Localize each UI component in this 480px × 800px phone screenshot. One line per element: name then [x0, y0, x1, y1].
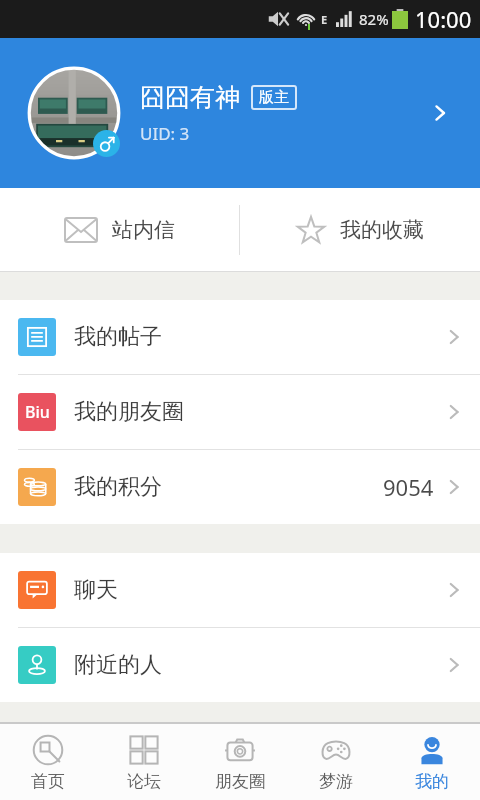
staticText: 梦游 [319, 771, 353, 792]
button[interactable]: 囧囧有神 [0, 38, 480, 188]
staticText: E [321, 12, 328, 27]
staticText: 82% [359, 9, 389, 29]
other: 查看个人资料 [418, 91, 462, 135]
staticText: 附近的人 [74, 651, 162, 679]
staticText: 首页 [31, 771, 65, 792]
staticText: Biu [25, 401, 50, 423]
button[interactable]: 朋友圈 [192, 724, 288, 800]
staticText: 站内信 [112, 217, 175, 243]
button[interactable]: 我的收藏 [240, 188, 480, 272]
button[interactable]: 梦游 [288, 724, 384, 800]
staticText: 我的朋友圈 [74, 398, 184, 426]
button[interactable]: 站内信 [0, 188, 239, 272]
staticText: 朋友圈 [215, 771, 266, 792]
staticText: 囧囧有神 [140, 82, 240, 113]
staticText: 我的 [415, 771, 449, 792]
button[interactable]: 论坛 [96, 724, 192, 800]
button[interactable]: 我的帖子 [0, 300, 480, 374]
staticText: 9054 [383, 472, 434, 502]
staticText: 论坛 [127, 771, 161, 792]
staticText: 我的积分 [74, 473, 162, 501]
button[interactable]: 我的积分 [0, 450, 480, 524]
staticText: 10:00 [415, 4, 472, 34]
button[interactable]: 首页 [0, 724, 96, 800]
button[interactable]: 我的 [384, 724, 480, 800]
button[interactable]: 附近的人 [0, 628, 480, 702]
staticText: UID: 3 [140, 122, 190, 145]
button[interactable]: 聊天 [0, 553, 480, 627]
staticText: 我的收藏 [340, 217, 424, 243]
staticText: 我的帖子 [74, 323, 162, 351]
button[interactable]: Biu [0, 375, 480, 449]
staticText: 聊天 [74, 576, 118, 604]
staticText: 版主 [259, 88, 289, 107]
